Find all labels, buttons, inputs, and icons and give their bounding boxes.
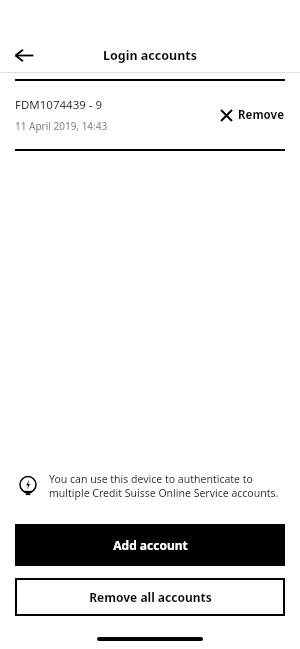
button[interactable]: FDM1074439 - 9 — [0, 81, 300, 149]
staticText: Add account — [113, 537, 188, 553]
button[interactable]: Remove — [213, 103, 285, 127]
staticText: Remove — [238, 107, 285, 123]
button[interactable]: Back — [8, 39, 40, 71]
button[interactable]: Remove all accounts — [15, 578, 285, 616]
staticText: You can use this device to authenticate … — [49, 472, 284, 500]
staticText: Login accounts — [103, 47, 197, 64]
staticText: Remove all accounts — [89, 589, 212, 605]
staticText: FDM1074439 - 9 — [15, 97, 103, 113]
button[interactable]: Add account — [15, 524, 285, 566]
staticText: 11 April 2019, 14:43 — [15, 119, 108, 133]
